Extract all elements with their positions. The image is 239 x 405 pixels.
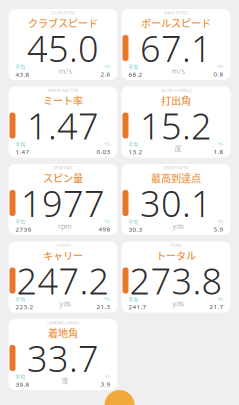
- staticText: 13.2: [128, 148, 142, 156]
- staticText: SPIN RATE: [53, 165, 72, 171]
- staticText: クラブスピード: [28, 16, 98, 30]
- staticText: +/-: [104, 374, 110, 380]
- button[interactable]: Record swing: [104, 375, 134, 405]
- staticText: 223.2: [15, 303, 33, 311]
- staticText: 39.8: [15, 380, 29, 388]
- staticText: 5.9: [213, 225, 223, 233]
- staticText: 30.3: [128, 225, 142, 233]
- staticText: 打出角: [161, 93, 191, 108]
- staticText: 30.1: [140, 178, 212, 227]
- staticText: 273.8: [129, 256, 222, 305]
- staticText: 67.1: [140, 23, 212, 72]
- button[interactable]: HEIGHT APEX: [121, 164, 230, 235]
- staticText: 21.7: [209, 302, 223, 311]
- staticText: 平均: [15, 141, 25, 148]
- staticText: 平均: [15, 296, 25, 303]
- staticText: キャリー: [43, 248, 83, 263]
- staticText: LAUNCH ANGLE: [160, 87, 191, 93]
- button[interactable]: BALL SPEED: [121, 9, 230, 80]
- staticText: 0.03: [96, 147, 110, 156]
- staticText: 1.47: [15, 148, 29, 156]
- staticText: 平均: [15, 218, 25, 225]
- staticText: TOTAL: [170, 242, 182, 248]
- staticText: CARRY: [56, 242, 70, 248]
- staticText: 15.2: [140, 101, 212, 150]
- staticText: m/s: [171, 66, 184, 76]
- staticText: +/-: [217, 219, 223, 225]
- button[interactable]: SPIN RATE: [8, 164, 117, 235]
- staticText: 平均: [15, 373, 25, 380]
- staticText: 平均: [128, 141, 138, 148]
- staticText: +/-: [217, 296, 223, 302]
- staticText: 平均: [128, 296, 138, 303]
- staticText: 45.0: [27, 23, 99, 72]
- staticText: m/s: [58, 66, 71, 76]
- staticText: yds: [172, 299, 183, 308]
- staticText: +/-: [104, 296, 110, 302]
- staticText: HEIGHT APEX: [163, 165, 189, 171]
- button[interactable]: LANDING ANGLE: [8, 319, 117, 390]
- staticText: 平均: [128, 63, 138, 70]
- staticText: トータル: [156, 248, 196, 263]
- staticText: +/-: [104, 141, 110, 147]
- staticText: 241.7: [128, 303, 146, 311]
- staticText: SMASH FACTOR: [47, 87, 78, 93]
- staticText: 着地角: [48, 326, 78, 340]
- staticText: +/-: [104, 219, 110, 225]
- button[interactable]: LAUNCH ANGLE: [121, 86, 230, 157]
- staticText: +/-: [104, 64, 110, 70]
- staticText: 度: [61, 376, 68, 386]
- staticText: 498: [98, 225, 110, 233]
- staticText: +/-: [217, 141, 223, 147]
- staticText: 1.47: [27, 101, 99, 150]
- staticText: 2739: [15, 225, 31, 233]
- staticText: 21.3: [96, 302, 110, 311]
- button[interactable]: SMASH FACTOR: [8, 86, 117, 157]
- staticText: LANDING ANGLE: [47, 320, 79, 326]
- staticText: rpm: [58, 221, 72, 231]
- staticText: +/-: [217, 64, 223, 70]
- button[interactable]: TOTAL: [121, 241, 230, 312]
- staticText: 247.2: [16, 256, 109, 305]
- staticText: BALL SPEED: [164, 10, 187, 16]
- staticText: 平均: [128, 218, 138, 225]
- staticText: 1977: [21, 178, 105, 227]
- staticText: 33.7: [27, 333, 99, 382]
- staticText: yds: [59, 299, 70, 308]
- staticText: ボールスピード: [141, 16, 211, 30]
- staticText: 68.2: [128, 70, 142, 78]
- button[interactable]: CLUB SPEED: [8, 9, 117, 80]
- staticText: 43.8: [15, 70, 29, 78]
- staticText: 3.9: [100, 380, 110, 388]
- staticText: 0.8: [213, 70, 223, 78]
- staticText: 2.6: [100, 70, 110, 78]
- button[interactable]: CARRY: [8, 241, 117, 312]
- staticText: CLUB SPEED: [51, 10, 75, 16]
- staticText: 平均: [15, 63, 25, 70]
- staticText: 最高到達点: [151, 171, 201, 185]
- staticText: 度: [174, 144, 181, 153]
- staticText: 1.8: [213, 147, 223, 156]
- staticText: yds: [172, 221, 183, 231]
- staticText: スピン量: [43, 171, 83, 185]
- staticText: ミート率: [43, 93, 83, 108]
